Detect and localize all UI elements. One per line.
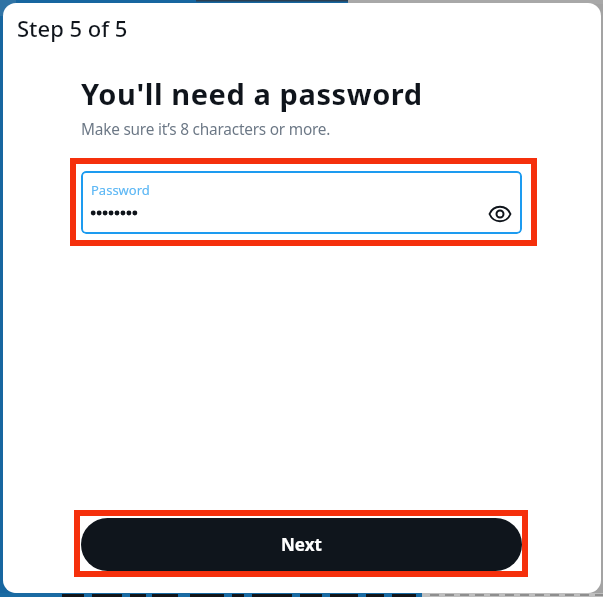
staticText: Password (91, 181, 150, 199)
staticText: Make sure it’s 8 characters or more. (81, 119, 331, 140)
button[interactable]: Password (81, 171, 522, 234)
staticText: Step 5 of 5 (17, 13, 128, 43)
staticText: Next (281, 533, 322, 556)
staticText: You'll need a password (81, 74, 423, 113)
button[interactable]: Show password (486, 200, 514, 228)
button[interactable]: Next (81, 518, 522, 571)
